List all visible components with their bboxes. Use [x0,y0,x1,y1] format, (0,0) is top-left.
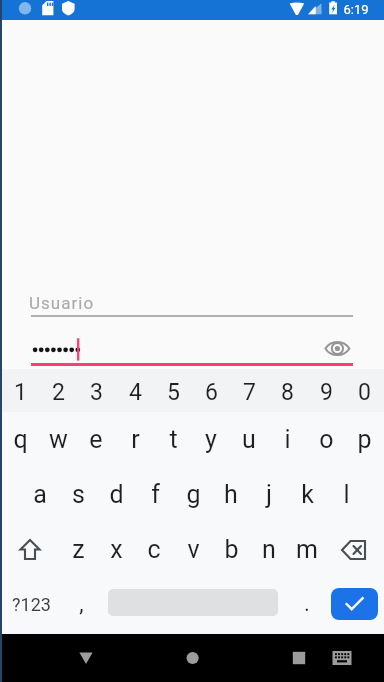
button[interactable]: , [62,572,100,632]
button[interactable]: 1 [1,369,39,412]
button[interactable]: 5 [154,369,192,412]
button[interactable]: q [1,412,39,465]
button[interactable]: k [288,465,326,518]
button[interactable]: . [288,572,326,632]
button[interactable]: w [39,412,77,465]
button[interactable]: Hide keyboard [62,634,110,682]
button[interactable]: s [59,465,97,518]
button[interactable]: r [116,412,154,465]
button[interactable]: Enter [331,588,378,620]
button[interactable]: a [21,465,59,518]
button[interactable]: e [77,412,115,465]
button[interactable]: l [327,465,365,518]
staticText: g [186,480,201,509]
button[interactable]: Backspace [335,523,373,577]
button[interactable]: o [307,412,345,465]
button[interactable]: Home [168,634,216,682]
staticText: 5 [167,379,180,406]
button[interactable]: 7 [230,369,268,412]
button[interactable]: Show password [324,336,350,362]
button[interactable]: Switch keyboard [320,634,364,682]
staticText: ?123 [12,594,51,615]
staticText: m [296,535,318,564]
button[interactable]: ?123 [0,572,62,632]
button[interactable]: Shift [11,523,49,577]
button[interactable]: b [212,518,250,572]
staticText: 6:19 [343,2,369,17]
staticText: 1 [14,379,27,406]
staticText: o [319,425,334,454]
button[interactable]: v [174,518,212,572]
staticText: h [224,480,238,509]
staticText: i [284,425,291,454]
button[interactable]: i [268,412,306,465]
staticText: q [13,425,28,454]
staticText: b [224,535,239,564]
staticText: a [33,480,47,509]
staticText: 9 [320,379,333,406]
staticText: 0 [358,379,371,406]
button[interactable] [2,288,384,317]
staticText: j [266,480,272,509]
staticText: u [242,425,256,454]
staticText: r [131,425,140,454]
staticText: 6 [205,379,218,406]
staticText: x [110,535,123,564]
button[interactable]: z [59,518,97,572]
staticText: 8 [281,379,294,406]
staticText: s [72,480,85,509]
button[interactable]: f [136,465,174,518]
staticText: l [343,480,350,509]
button[interactable]: 6 [192,369,230,412]
staticText: v [187,535,200,564]
button[interactable]: 0 [345,369,383,412]
staticText: t [169,425,178,454]
button[interactable]: u [230,412,268,465]
button[interactable]: 8 [268,369,306,412]
button[interactable]: x [97,518,135,572]
button[interactable]: h [212,465,250,518]
staticText: 3 [90,379,103,406]
staticText: , [79,591,84,617]
staticText: 2 [52,379,65,406]
button[interactable]: 9 [307,369,345,412]
button[interactable]: 3 [77,369,115,412]
button[interactable]: t [154,412,192,465]
staticText: . [304,591,310,617]
staticText: c [147,535,161,564]
staticText: n [262,535,276,564]
staticText: w [49,425,68,454]
staticText: f [151,480,160,509]
button[interactable]: m [288,518,326,572]
button[interactable]: j [250,465,288,518]
button[interactable]: 2 [39,369,77,412]
button[interactable] [2,336,384,364]
staticText: d [109,480,124,509]
staticText: Usuario [29,293,95,313]
button[interactable]: g [174,465,212,518]
button[interactable]: 4 [116,369,154,412]
button[interactable]: n [250,518,288,572]
staticText: 4 [129,379,142,406]
button[interactable]: y [192,412,230,465]
staticText: k [301,480,314,509]
button[interactable]: Recent apps [274,634,322,682]
staticText: 7 [243,379,256,406]
staticText: p [357,425,372,454]
staticText: y [205,425,217,454]
button[interactable]: c [135,518,173,572]
button[interactable]: p [345,412,383,465]
staticText: e [89,425,103,454]
button[interactable]: d [97,465,135,518]
staticText: z [72,535,85,564]
